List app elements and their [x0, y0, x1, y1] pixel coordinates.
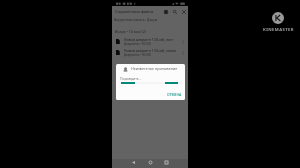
button[interactable]: ОТМЕНА — [165, 90, 184, 99]
staticText: Вчера • 14 мая (2) — [115, 29, 146, 34]
staticText: Новый документ 1.06.odt, копия — [124, 48, 176, 52]
button[interactable]: Recents — [163, 159, 170, 166]
button[interactable]: Home — [147, 159, 154, 166]
button[interactable]: Settings — [163, 9, 169, 15]
button[interactable]: More options — [180, 50, 186, 56]
button[interactable]: Search — [172, 9, 178, 15]
staticText: ОТМЕНА — [167, 92, 182, 97]
staticText: Внутренняя память › Докум — [114, 18, 158, 22]
button[interactable]: Back — [130, 159, 137, 166]
staticText: Подождите... — [120, 76, 142, 81]
staticText: Сохранённые файлы — [115, 9, 154, 14]
button[interactable]: Новый документ 1.06.odt, копия — [112, 47, 188, 58]
button[interactable]: More options — [180, 39, 186, 45]
button[interactable]: Новый документ 1.06.odt, лист — [112, 36, 188, 47]
staticText: KINEMASTER — [263, 27, 294, 33]
staticText: Новый документ 1.06.odt, лист — [124, 37, 174, 41]
staticText: Документы • 563 КБ — [124, 53, 151, 57]
staticText: Неизвестное приложение — [131, 66, 178, 71]
button[interactable]: Close — [181, 9, 187, 15]
staticText: Документы • 563 КБ — [124, 42, 151, 46]
